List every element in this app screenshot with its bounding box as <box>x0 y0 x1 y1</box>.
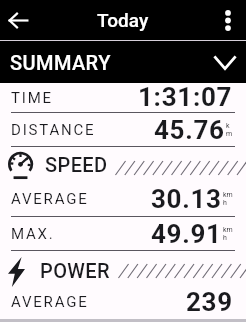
button[interactable]: SUMMARY <box>0 41 246 83</box>
staticText: 30.13 <box>151 184 222 214</box>
staticText: 45.76 <box>154 115 225 145</box>
staticText: SPEED <box>45 153 108 176</box>
staticText: 49.91 <box>151 219 222 249</box>
staticText: POWER <box>40 259 111 282</box>
button[interactable]: MAX. <box>0 217 246 250</box>
staticText: 239 <box>186 287 233 317</box>
button[interactable]: Back <box>1 3 35 37</box>
button[interactable]: AVERAGE <box>0 182 246 216</box>
button[interactable]: TIME <box>0 83 246 112</box>
staticText: km <box>223 226 233 234</box>
staticText: k <box>226 122 230 130</box>
staticText: AVERAGE <box>11 190 89 208</box>
staticText: DISTANCE <box>11 121 96 139</box>
staticText: SUMMARY <box>10 51 111 74</box>
staticText: km <box>223 191 233 199</box>
staticText: Today <box>97 9 149 31</box>
button[interactable]: DISTANCE <box>0 113 246 146</box>
staticText: 1:31:07 <box>138 82 233 111</box>
staticText: MAX. <box>11 225 55 243</box>
button[interactable]: AVERAGE <box>0 285 246 319</box>
staticText: AVERAGE <box>11 293 89 311</box>
staticText: m <box>226 130 233 138</box>
button[interactable]: More options <box>211 3 245 37</box>
staticText: h <box>223 199 227 207</box>
staticText: h <box>223 234 227 242</box>
staticText: TIME <box>11 89 53 107</box>
